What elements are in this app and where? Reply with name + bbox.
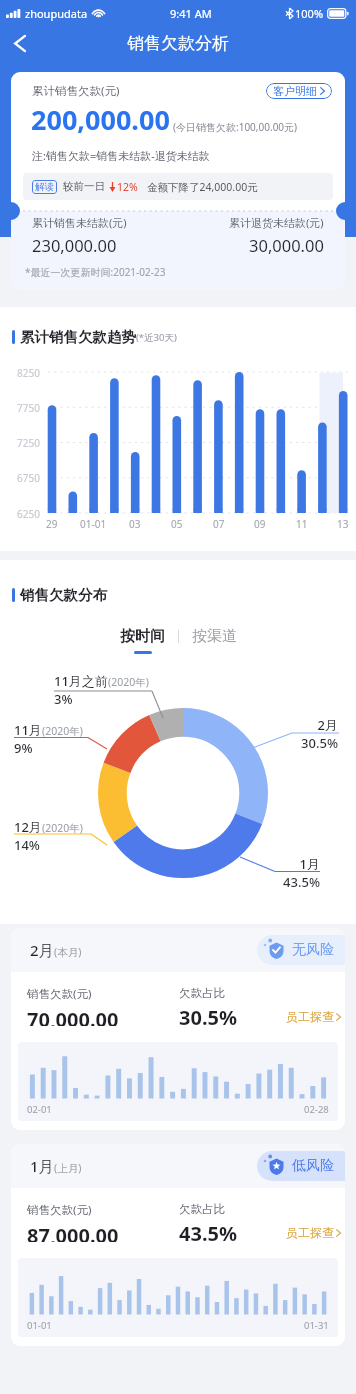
staticText: 07 (213, 517, 225, 531)
staticText: 客户明细 (273, 84, 317, 98)
staticText: 累计退货未结款(元) (229, 215, 324, 230)
staticText: 7250 (17, 436, 40, 450)
staticText: 欠款占比 (179, 986, 225, 1000)
staticText: 87,000.00 (27, 1222, 119, 1242)
staticText: 05 (171, 517, 183, 531)
staticText: 2月 (30, 940, 54, 960)
staticText: 9% (14, 739, 33, 757)
staticText: 13 (337, 517, 349, 531)
staticText: 员工探查 (286, 1225, 334, 1240)
staticText: 6250 (17, 507, 40, 521)
staticText: 金额下降了24,000.00元 (147, 180, 258, 194)
button[interactable]: 按时间 (118, 627, 167, 654)
staticText: 销售欠款分析 (127, 33, 229, 54)
staticText: 按渠道 (192, 627, 237, 646)
staticText: 01-01 (27, 1319, 52, 1332)
staticText: 6750 (17, 471, 40, 485)
staticText: 70,000.00 (27, 1006, 119, 1026)
button[interactable]: Back (0, 26, 38, 60)
staticText: 200,000.00 (31, 101, 170, 138)
button[interactable]: 员工探查 (286, 1009, 345, 1024)
staticText: 销售欠款(元) (27, 1202, 92, 1218)
staticText: (2020年) (108, 675, 149, 689)
staticText: 29 (46, 517, 58, 531)
staticText: 累计销售欠款趋势 (20, 328, 136, 346)
staticText: 100% (295, 6, 324, 21)
button[interactable]: 无风险 (257, 935, 345, 965)
staticText: 02-28 (304, 1103, 329, 1116)
staticText: 按时间 (120, 627, 165, 646)
staticText: 解读 (35, 181, 54, 193)
staticText: (今日销售欠款:100,00.00元) (173, 120, 298, 134)
staticText: 累计销售欠款(元) (32, 83, 120, 99)
staticText: 低风险 (292, 1157, 334, 1175)
staticText: (上月) (54, 1161, 82, 1175)
staticText: 11月之前 (54, 672, 108, 690)
staticText: 11 (296, 517, 308, 531)
button[interactable]: 客户明细 (266, 83, 332, 99)
staticText: 1月 (30, 1156, 54, 1176)
staticText: 9:41 AM (170, 6, 212, 21)
staticText: 12% (117, 180, 138, 194)
staticText: 30,000.00 (249, 234, 324, 256)
staticText: 注:销售欠款=销售未结款-退货未结款 (32, 148, 210, 163)
staticText: 01-31 (304, 1319, 329, 1332)
staticText: 1月 (284, 855, 320, 873)
staticText: 230,000.00 (32, 234, 117, 256)
staticText: 43.5% (272, 873, 320, 891)
staticText: 2月 (302, 716, 338, 734)
staticText: 较前一日 (63, 180, 105, 193)
staticText: 30.5% (179, 1004, 237, 1026)
staticText: 43.5% (179, 1220, 237, 1242)
staticText: (本月) (54, 945, 82, 959)
staticText: (*近30天) (136, 331, 177, 344)
staticText: *最近一次更新时间:2021-02-23 (25, 265, 166, 279)
staticText: 09 (254, 517, 266, 531)
staticText: 累计销售未结款(元) (32, 215, 127, 230)
staticText: 30.5% (290, 734, 338, 752)
button[interactable]: 低风险 (257, 1151, 345, 1181)
staticText: 02-01 (27, 1103, 52, 1116)
staticText: 01-01 (80, 517, 107, 531)
button[interactable]: 员工探查 (286, 1225, 345, 1240)
staticText: zhoupudata (25, 6, 88, 21)
staticText: 无风险 (292, 941, 334, 959)
staticText: 12月 (14, 818, 42, 836)
staticText: 3% (54, 690, 73, 708)
staticText: 员工探查 (286, 1009, 334, 1024)
button[interactable]: 按渠道 (190, 627, 239, 646)
staticText: 7750 (17, 401, 40, 415)
staticText: 销售欠款(元) (27, 986, 92, 1002)
staticText: 欠款占比 (179, 1202, 225, 1216)
staticText: 14% (14, 836, 40, 854)
staticText: 销售欠款分布 (20, 586, 107, 604)
staticText: (2020年) (42, 724, 83, 738)
staticText: 03 (129, 517, 141, 531)
staticText: (2020年) (42, 821, 83, 835)
staticText: 11月 (14, 721, 42, 739)
staticText: 8250 (17, 366, 40, 380)
